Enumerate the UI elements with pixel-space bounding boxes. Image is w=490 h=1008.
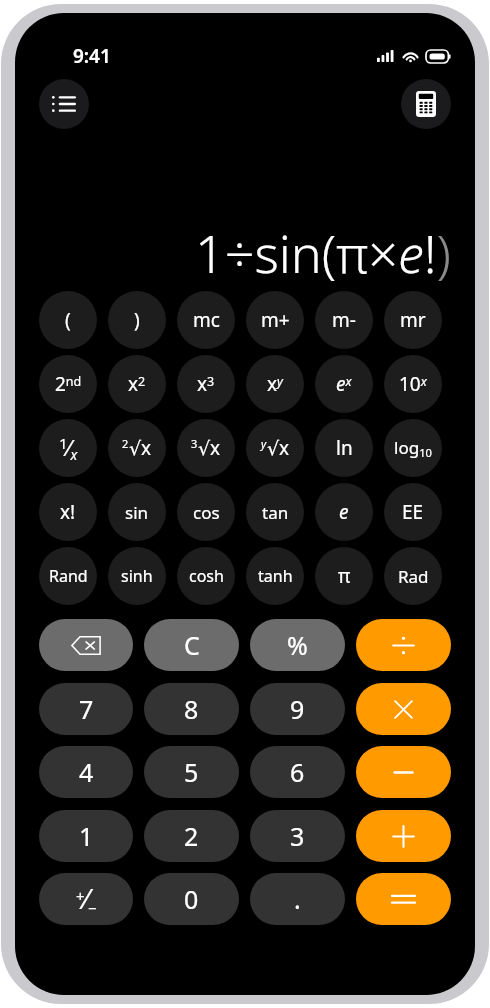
button[interactable]: xy [246, 355, 304, 413]
staticText: 3 [191, 436, 198, 451]
staticText: x2 [128, 371, 146, 397]
button[interactable]: C [144, 619, 239, 671]
staticText: 6 [290, 755, 305, 789]
staticText: ( [65, 307, 71, 333]
button[interactable]: ex [315, 355, 373, 413]
button[interactable]: 8 [144, 683, 239, 735]
staticText: log10 [394, 436, 432, 460]
staticText: e [339, 499, 349, 525]
button[interactable]: sin [108, 483, 166, 541]
button[interactable]: cos [177, 483, 235, 541]
button[interactable]: 5 [144, 746, 239, 798]
staticText: 2 [122, 436, 129, 451]
staticText: . [294, 882, 301, 916]
staticText: 1⁄x [59, 432, 78, 464]
button[interactable]: 3 [250, 810, 345, 862]
button[interactable]: % [250, 619, 345, 671]
button[interactable]: EE [384, 483, 442, 541]
button[interactable]: Rad [384, 547, 442, 605]
staticText: +⁄− [76, 880, 97, 919]
button[interactable]: mc [177, 291, 235, 349]
staticText: 2 [184, 819, 199, 853]
button[interactable]: e [315, 483, 373, 541]
button[interactable]: π [315, 547, 373, 605]
staticText: 5 [184, 755, 199, 789]
staticText: sin [125, 501, 149, 524]
button[interactable]: − [356, 746, 451, 798]
button[interactable]: Calculator [401, 79, 451, 129]
button[interactable]: 1 [39, 810, 133, 862]
button[interactable]: square root [108, 419, 166, 477]
button[interactable]: + [356, 810, 451, 862]
staticText: ) [134, 307, 140, 333]
staticText: ex [336, 371, 352, 397]
button[interactable]: 2nd [39, 355, 97, 413]
button[interactable]: Plus minus [39, 873, 133, 925]
staticText: x! [60, 499, 76, 525]
staticText: 4 [79, 755, 94, 789]
button[interactable]: = [356, 873, 451, 925]
button[interactable]: cosh [177, 547, 235, 605]
button[interactable]: Delete [39, 619, 133, 671]
button[interactable]: tan [246, 483, 304, 541]
staticText: mc [193, 307, 220, 333]
button[interactable]: ) [108, 291, 166, 349]
staticText: 1 [79, 819, 94, 853]
button[interactable]: ÷ [356, 619, 451, 671]
button[interactable]: log10 [384, 419, 442, 477]
staticText: EE [402, 499, 424, 525]
staticText: cos [193, 501, 220, 524]
staticText: cosh [189, 565, 224, 587]
button[interactable]: mr [384, 291, 442, 349]
button[interactable]: 9 [250, 683, 345, 735]
staticText: π [338, 563, 351, 589]
button[interactable]: sinh [108, 547, 166, 605]
button[interactable]: x3 [177, 355, 235, 413]
staticText: xy [267, 371, 283, 397]
staticText: √x [129, 435, 152, 461]
staticText: √x [267, 435, 290, 461]
staticText: 7 [79, 692, 94, 726]
staticText: 1÷sin(π×e!) [195, 217, 451, 288]
staticText: % [287, 628, 308, 662]
staticText: 2nd [55, 371, 82, 397]
button[interactable]: 10x [384, 355, 442, 413]
button[interactable]: 7 [39, 683, 133, 735]
button[interactable]: nth root [246, 419, 304, 477]
staticText: y [261, 436, 267, 451]
button[interactable]: Rand [39, 547, 97, 605]
button[interactable]: 4 [39, 746, 133, 798]
staticText: m+ [261, 307, 290, 333]
staticText: C [184, 628, 200, 662]
button[interactable]: m+ [246, 291, 304, 349]
staticText: 8 [184, 692, 199, 726]
staticText: √x [198, 435, 221, 461]
button[interactable]: x! [39, 483, 97, 541]
button[interactable]: x2 [108, 355, 166, 413]
button[interactable]: History [39, 79, 89, 129]
staticText: Rad [398, 565, 429, 588]
staticText: m- [332, 307, 356, 333]
button[interactable]: . [250, 873, 345, 925]
button[interactable]: 6 [250, 746, 345, 798]
button[interactable]: cube root [177, 419, 235, 477]
staticText: sinh [121, 565, 153, 587]
button[interactable]: 0 [144, 873, 239, 925]
staticText: x3 [197, 371, 215, 397]
button[interactable]: m- [315, 291, 373, 349]
staticText: mr [400, 307, 426, 333]
staticText: ln [336, 435, 353, 461]
button[interactable]: tanh [246, 547, 304, 605]
button[interactable]: × [356, 683, 451, 735]
button[interactable]: ( [39, 291, 97, 349]
staticText: tanh [258, 565, 293, 587]
staticText: 3 [290, 819, 305, 853]
button[interactable]: one over x [39, 419, 97, 477]
staticText: 9:41 [73, 43, 111, 69]
staticText: tan [262, 501, 289, 524]
staticText: 0 [184, 882, 199, 916]
staticText: Rand [49, 565, 88, 587]
button[interactable]: ln [315, 419, 373, 477]
staticText: 9 [290, 692, 305, 726]
button[interactable]: 2 [144, 810, 239, 862]
